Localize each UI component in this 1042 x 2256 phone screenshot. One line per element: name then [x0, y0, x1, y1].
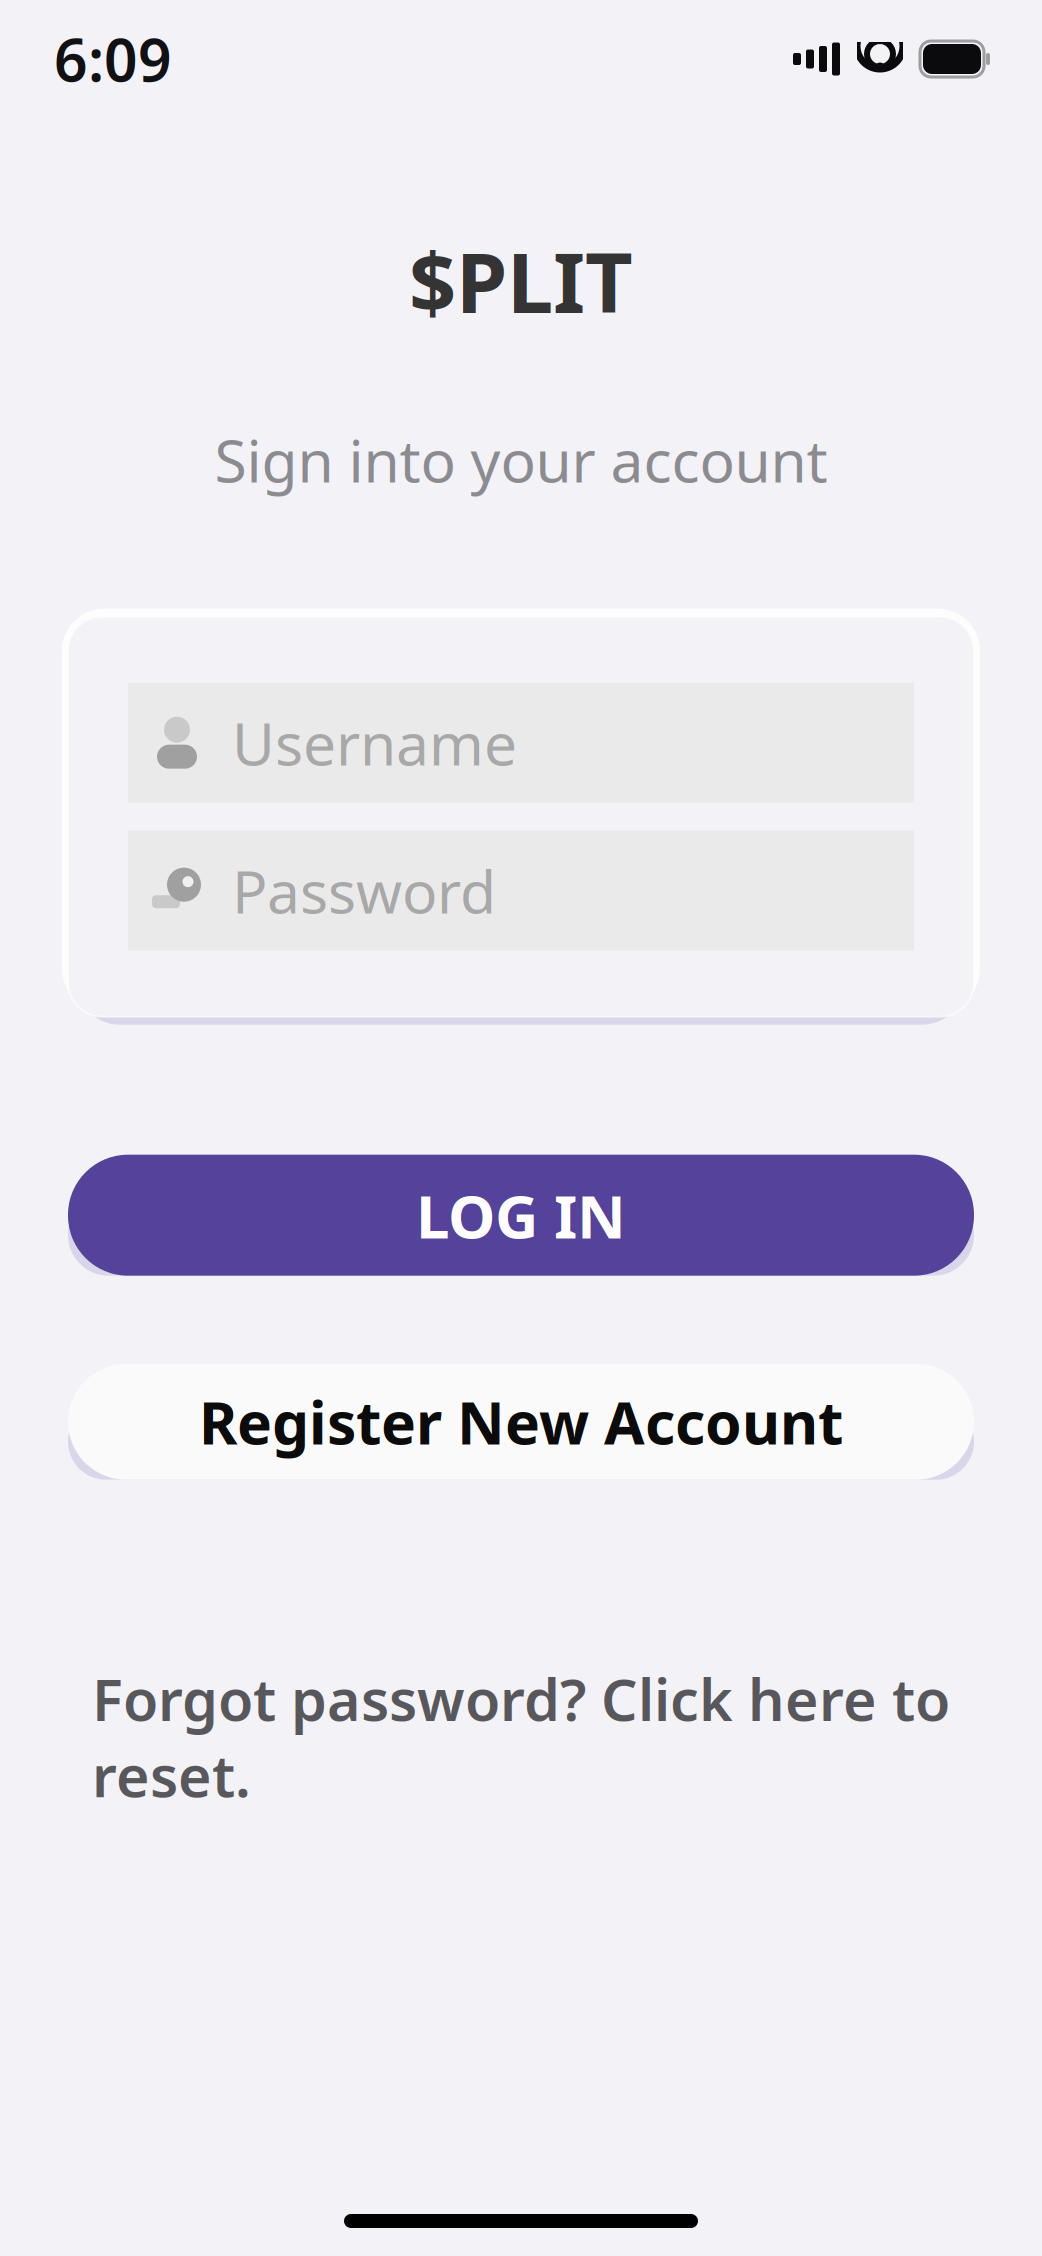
staticText: LOG IN [416, 1175, 626, 1255]
staticText: Username [232, 704, 517, 782]
staticText: Password [232, 852, 496, 930]
staticText: $PLIT [409, 226, 633, 336]
staticText: Sign into your account [214, 421, 827, 499]
staticText: 6:09 [54, 20, 172, 98]
staticText: Register New Account [199, 1383, 843, 1461]
button[interactable]: LOG IN [68, 1155, 974, 1276]
button[interactable]: Forgot password? Click here to reset. [52, 1645, 990, 1829]
button[interactable]: Register New Account [68, 1364, 974, 1480]
staticText: Forgot password? Click here to reset. [92, 1661, 950, 1813]
